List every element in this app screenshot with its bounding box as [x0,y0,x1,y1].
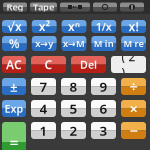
button[interactable]: Tape [30,2,57,11]
staticText: 6 [99,100,107,117]
staticText: 3 [99,122,107,139]
button[interactable]: ÷ [121,78,146,95]
button[interactable]: M re [121,36,146,51]
staticText: AC [6,56,22,72]
staticText: 1 [39,122,47,139]
staticText: Exp [4,101,23,116]
staticText: % [9,35,20,51]
button[interactable]: C [31,56,66,73]
button[interactable]: Exp [2,100,26,117]
staticText: M in [94,37,114,50]
button[interactable]: 2 [61,122,86,139]
button[interactable]: xⁿ [62,20,86,33]
staticText: x! [129,18,139,34]
staticText: 7 [39,78,47,95]
staticText: ± [10,78,18,95]
staticText: 9 [99,78,107,95]
button[interactable]: 9 [91,78,116,95]
staticText: = [9,131,18,150]
staticText: 5 [69,100,77,117]
button[interactable]: Settings [93,2,117,11]
button[interactable]: = [2,122,26,150]
button[interactable]: 1/x [91,20,116,33]
button[interactable]: Info [120,2,144,11]
button[interactable]: M in [91,36,116,51]
staticText: 1/x [96,19,112,34]
button[interactable]: Swap x and y [60,2,90,11]
staticText: Tape [33,1,54,13]
button[interactable]: AC [2,56,26,73]
button[interactable]: √x [2,20,27,33]
button[interactable]: 8 [61,78,86,95]
button[interactable]: ( 2 ) [111,56,146,73]
button[interactable]: − [121,122,146,139]
button[interactable]: % [2,36,27,51]
staticText: xⁿ [68,18,80,34]
staticText: ÷ [129,77,137,96]
staticText: − [129,121,137,140]
staticText: Del [80,57,97,72]
staticText: x² [39,18,50,34]
staticText: C [44,56,52,72]
button[interactable]: 6 [91,100,116,117]
button[interactable]: x→y [32,36,57,51]
staticText: ( 2 ) [121,49,135,80]
button[interactable]: Del [71,56,106,73]
staticText: 4 [39,100,47,117]
button[interactable]: x→M [62,36,86,51]
staticText: x→M [63,37,85,50]
button[interactable]: 1 [31,122,56,139]
button[interactable]: 3 [91,122,116,139]
staticText: × [129,99,137,118]
button[interactable]: 5 [61,100,86,117]
staticText: 2 [69,122,77,139]
staticText: 8 [69,78,77,95]
button[interactable]: × [121,100,146,117]
button[interactable]: ± [2,78,26,95]
button[interactable]: 7 [31,78,56,95]
button[interactable]: x! [121,20,146,33]
staticText: x→y [35,37,53,50]
button[interactable]: 4 [31,100,56,117]
button[interactable]: Reg [3,2,27,11]
staticText: Reg [6,1,23,13]
button[interactable]: x² [32,20,57,33]
staticText: M re [124,37,144,50]
staticText: √x [7,18,22,34]
staticText: i [131,3,133,11]
